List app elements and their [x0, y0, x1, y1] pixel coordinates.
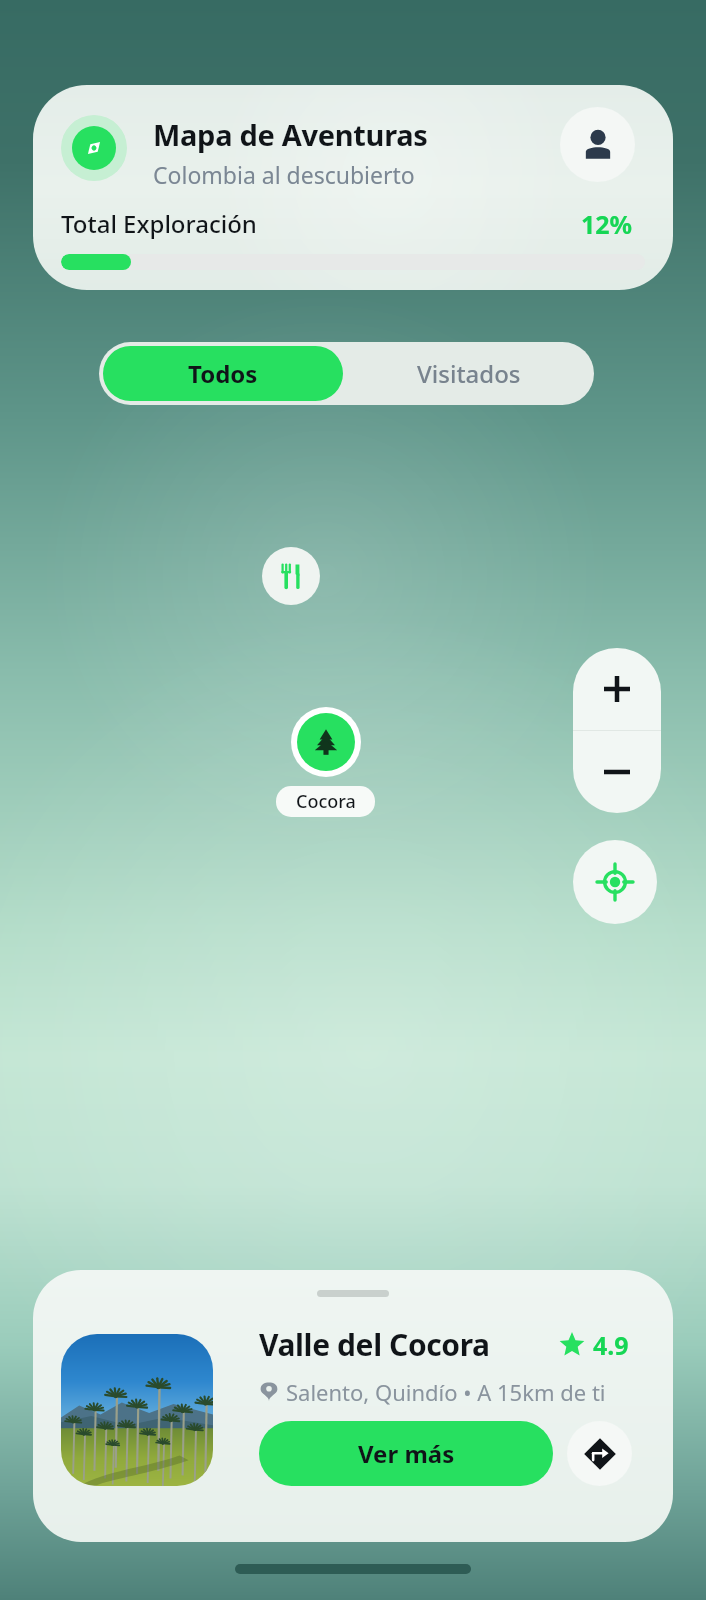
- button[interactable]: Visitados: [347, 346, 590, 401]
- staticText: Colombia al descubierto: [153, 159, 415, 190]
- button[interactable]: Valle del Cocora: [297, 713, 355, 771]
- button[interactable]: Ver más: [259, 1421, 553, 1486]
- button[interactable]: Todos: [103, 346, 343, 401]
- staticText: Todos: [188, 357, 258, 390]
- button[interactable]: Mi ubicación: [573, 840, 657, 924]
- staticText: Visitados: [417, 357, 521, 390]
- button[interactable]: Alejar: [573, 731, 661, 813]
- button[interactable]: Cómo llegar: [567, 1421, 632, 1486]
- staticText: Cocora: [296, 789, 356, 814]
- staticText: 4.9: [593, 1328, 629, 1362]
- staticText: Ver más: [358, 1437, 455, 1470]
- staticText: 12%: [581, 207, 633, 241]
- button[interactable]: Restaurantes: [262, 547, 320, 605]
- staticText: Salento, Quindío • A 15km de ti: [286, 1377, 606, 1407]
- staticText: Valle del Cocora: [259, 1324, 559, 1365]
- button[interactable]: Cocora: [276, 786, 375, 817]
- button[interactable]: Acercar: [573, 648, 661, 730]
- button[interactable]: Perfil: [560, 107, 635, 182]
- staticText: Mapa de Aventuras: [153, 115, 428, 154]
- staticText: Total Exploración: [61, 207, 257, 240]
